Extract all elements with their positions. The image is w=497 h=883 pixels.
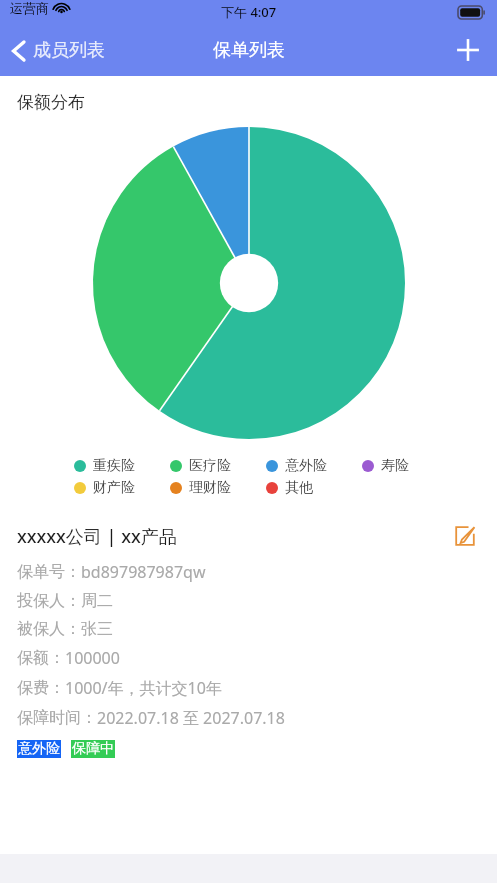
staticText: 保障中 xyxy=(72,740,114,758)
button[interactable]: 保障中 xyxy=(71,740,115,758)
button[interactable]: Add policy xyxy=(439,27,497,73)
staticText: 其他 xyxy=(285,479,313,497)
staticText: 重疾险 xyxy=(93,457,135,475)
button[interactable]: xxxxx公司 | xx产品 xyxy=(0,521,497,758)
staticText: 寿险 xyxy=(381,457,409,475)
button[interactable]: 意外险 xyxy=(17,740,61,758)
staticText: 保额分布 xyxy=(17,92,85,113)
button[interactable]: 成员列表 xyxy=(0,33,117,68)
staticText: 财产险 xyxy=(93,479,135,497)
staticText: 医疗险 xyxy=(189,457,231,475)
staticText: 1000/年，共计交10年 xyxy=(65,677,222,699)
staticText: 成员列表 xyxy=(33,39,105,62)
staticText: bd897987987qw xyxy=(81,561,206,583)
staticText: 张三 xyxy=(81,619,113,639)
staticText: 2022.07.18 至 2027.07.18 xyxy=(97,707,285,729)
staticText: 保额： xyxy=(17,648,65,668)
staticText: 保费： xyxy=(17,678,65,698)
staticText: 下午 4:07 xyxy=(221,3,277,21)
button[interactable]: Edit policy xyxy=(450,521,480,551)
staticText: 100000 xyxy=(65,647,120,669)
staticText: 保单列表 xyxy=(213,39,285,62)
staticText: 理财险 xyxy=(189,479,231,497)
staticText: 被保人： xyxy=(17,619,81,639)
staticText: 意外险 xyxy=(285,457,327,475)
staticText: xxxxx公司 | xx产品 xyxy=(17,524,450,549)
staticText: 周二 xyxy=(81,591,113,611)
staticText: 意外险 xyxy=(18,740,60,758)
staticText: 投保人： xyxy=(17,591,81,611)
staticText: 保障时间： xyxy=(17,708,97,728)
staticText: 保单号： xyxy=(17,562,81,582)
staticText: 运营商 xyxy=(10,0,49,16)
